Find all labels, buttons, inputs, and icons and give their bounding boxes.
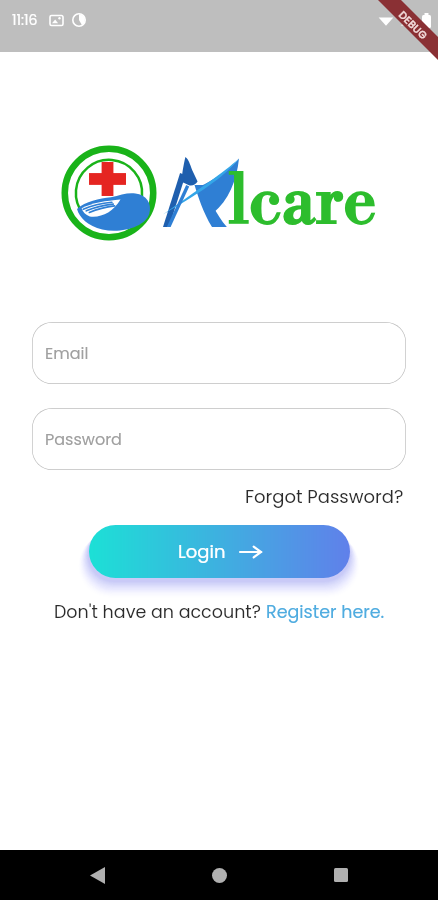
staticText: 11:16	[12, 10, 38, 30]
staticText: lcare	[229, 162, 377, 245]
button[interactable]: Forgot Password?	[245, 482, 438, 511]
staticText: Register here.	[266, 600, 385, 625]
button[interactable]: Login	[89, 525, 350, 578]
staticText: Don't have an account?	[54, 600, 266, 625]
staticText: DEBUG	[396, 8, 431, 42]
staticText: Login	[178, 539, 226, 564]
staticText: Email	[45, 342, 89, 364]
staticText: Forgot Password?	[245, 484, 404, 509]
button[interactable]: Recent apps	[316, 850, 366, 900]
button[interactable]: Back	[72, 850, 122, 900]
button[interactable]: Email	[32, 322, 406, 384]
staticText: Password	[45, 428, 122, 450]
button[interactable]: Password	[32, 408, 406, 470]
button[interactable]: Home	[194, 850, 244, 900]
button[interactable]: Register here.	[266, 600, 385, 625]
